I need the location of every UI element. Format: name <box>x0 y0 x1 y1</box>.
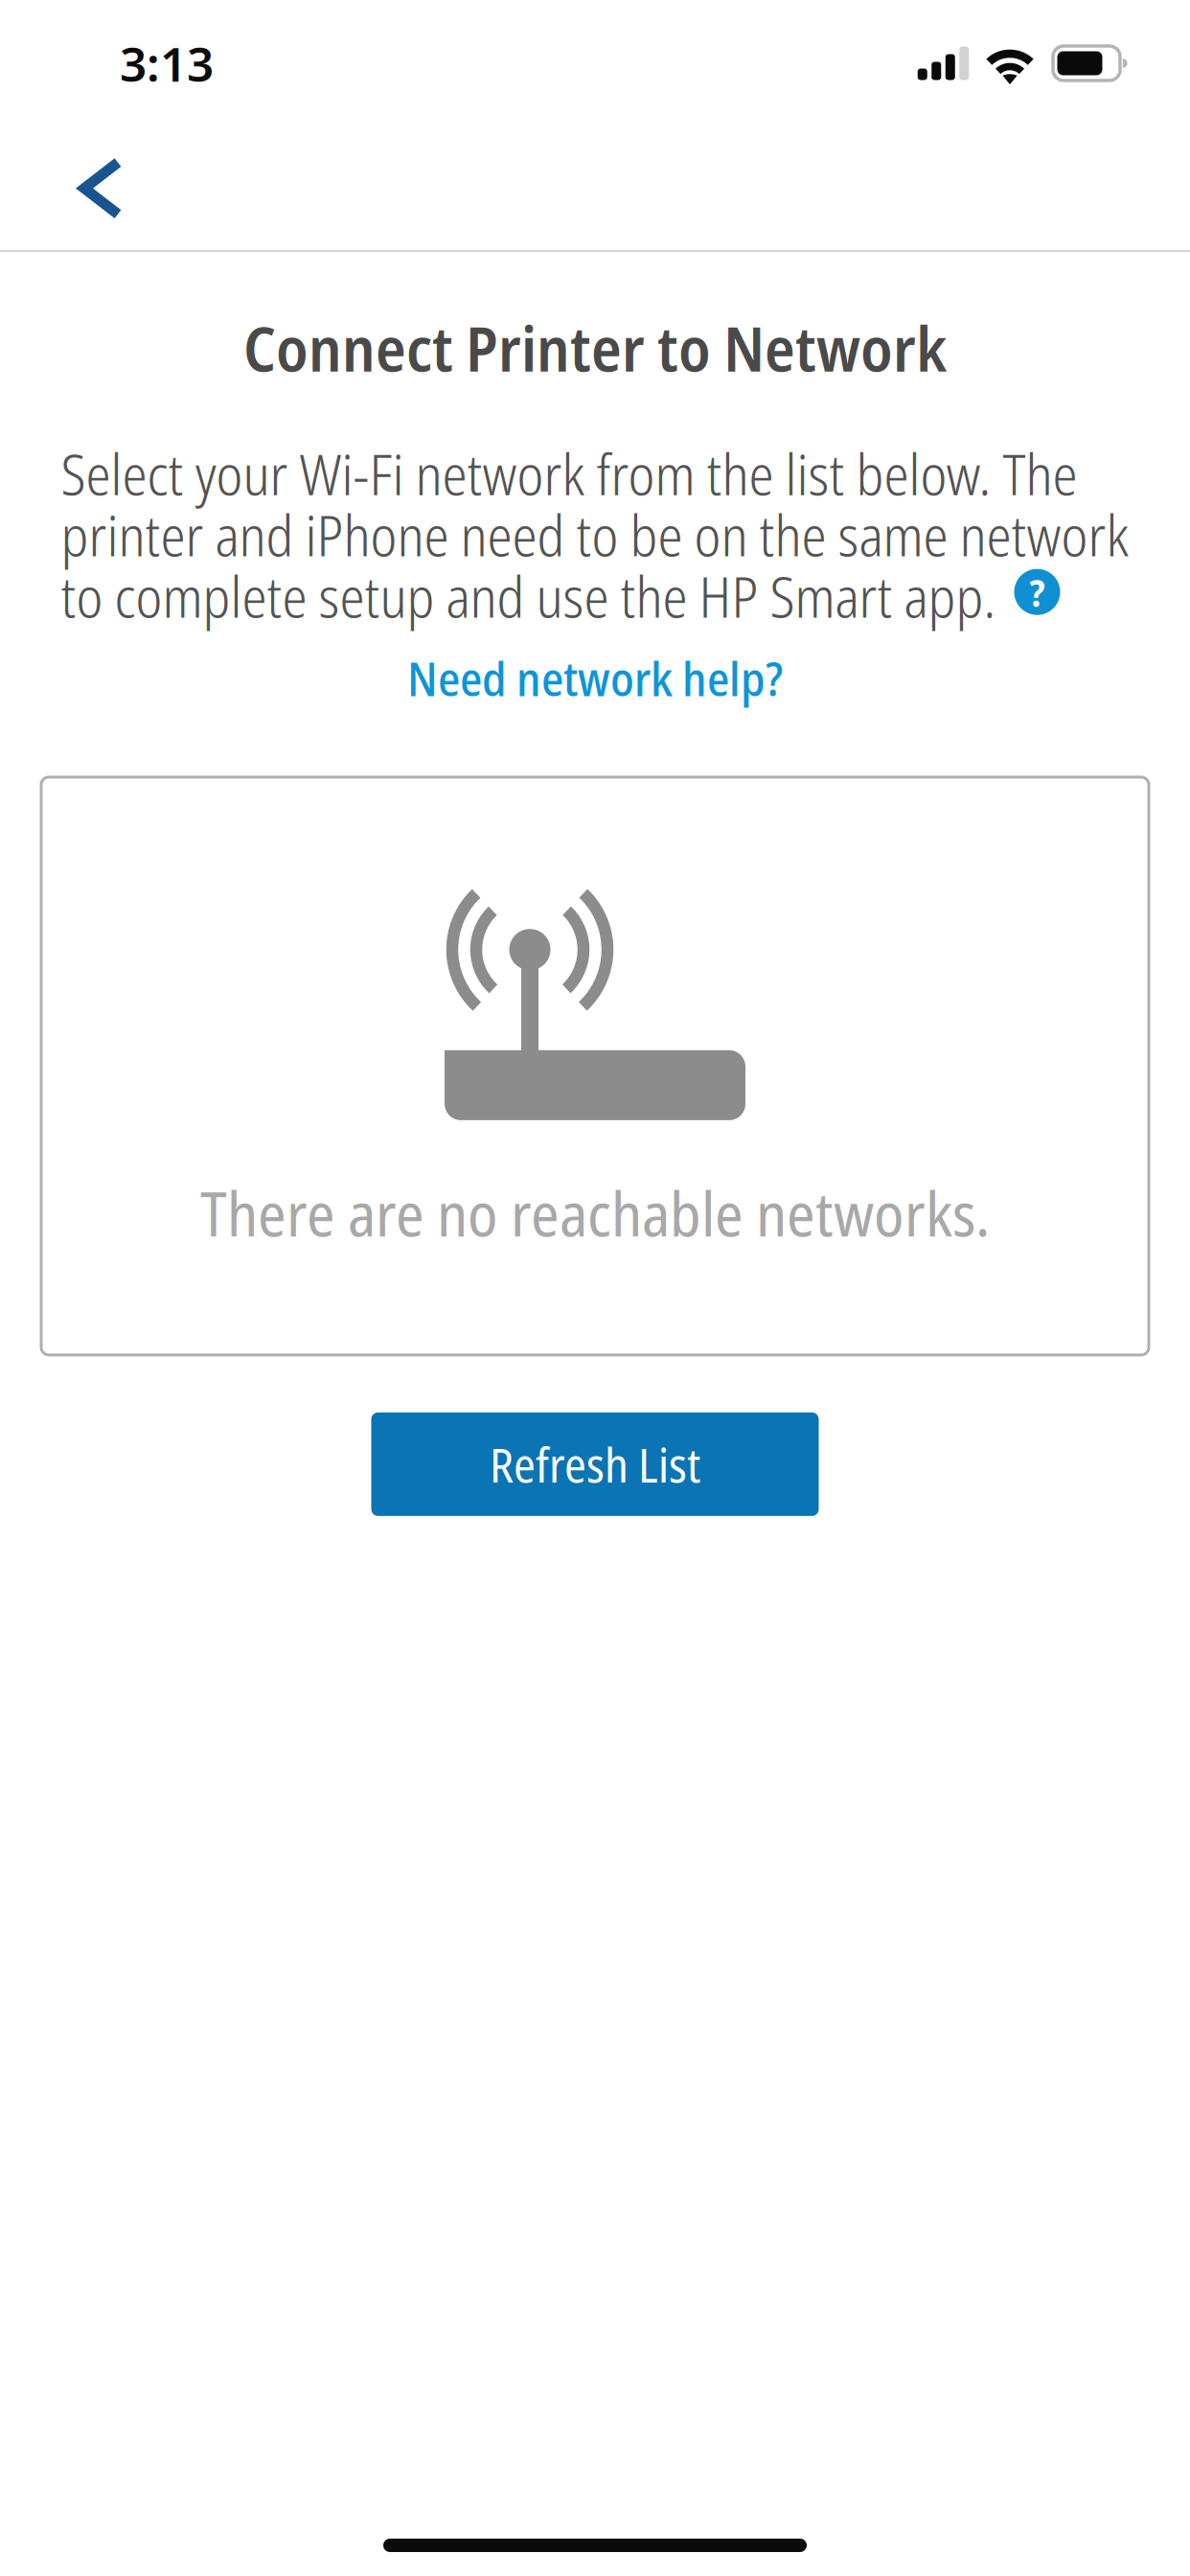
staticText: Need network help? <box>407 646 783 710</box>
staticText: ? <box>1030 566 1045 618</box>
staticText: Refresh List <box>490 1432 700 1496</box>
button[interactable]: Back <box>0 126 209 250</box>
button[interactable]: Refresh List <box>371 1412 819 1516</box>
staticText: Select your Wi-Fi network from the list … <box>61 435 1129 634</box>
staticText: There are no reachable networks. <box>200 1171 990 1255</box>
staticText: Connect Printer to Network <box>243 305 947 390</box>
button[interactable]: Help <box>1014 569 1185 634</box>
button[interactable]: Need network help? <box>407 636 783 720</box>
staticText: 3:13 <box>120 31 214 95</box>
